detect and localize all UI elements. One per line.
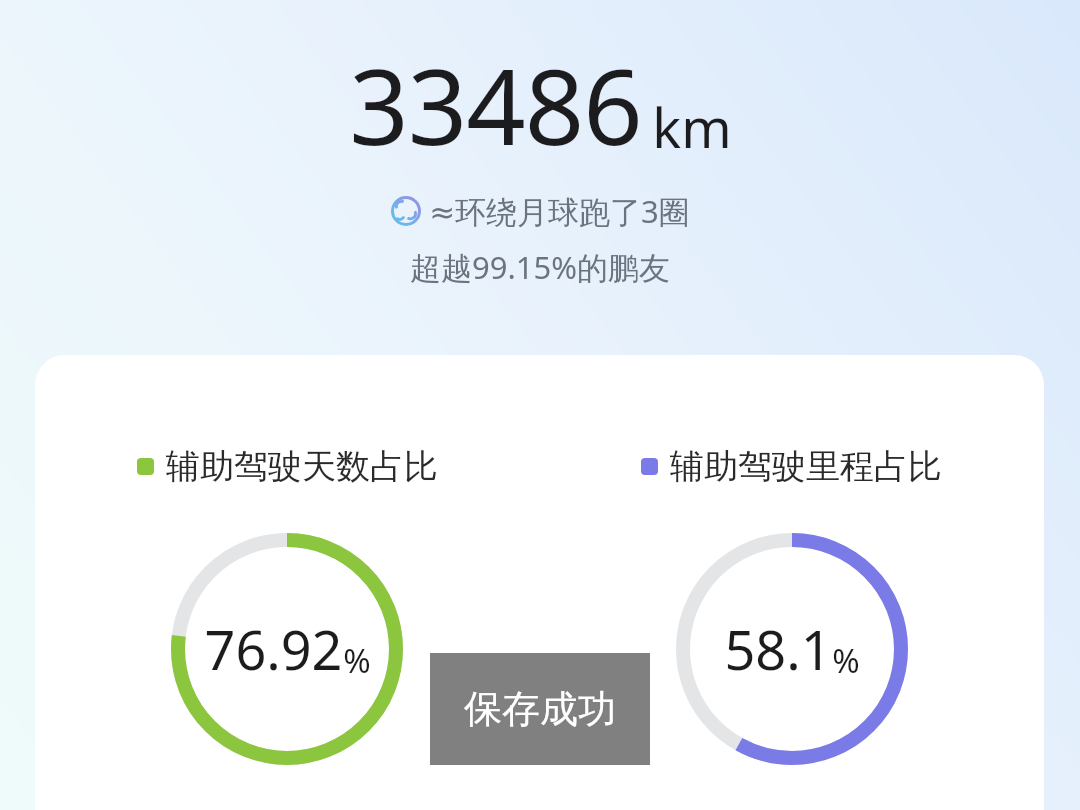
staticText: % xyxy=(343,638,371,683)
button[interactable]: 辅助驾驶天数占比 xyxy=(35,355,1044,810)
button[interactable]: 保存成功 xyxy=(430,653,650,765)
staticText: 超越99.15%的鹏友 xyxy=(410,246,670,288)
button[interactable]: 辅助驾驶天数占比 xyxy=(35,355,539,765)
staticText: 33486 xyxy=(349,34,642,176)
staticText: 辅助驾驶里程占比 xyxy=(670,445,942,488)
staticText: 76.92 xyxy=(204,612,343,686)
other: Globe xyxy=(391,196,421,226)
staticText: 58.1 xyxy=(724,612,832,686)
staticText: km xyxy=(652,90,732,164)
staticText: 辅助驾驶天数占比 xyxy=(166,445,438,488)
staticText: ≈环绕月球跑了3圈 xyxy=(429,190,690,232)
button[interactable]: 辅助驾驶里程占比 xyxy=(539,355,1044,765)
staticText: 保存成功 xyxy=(464,685,616,733)
staticText: % xyxy=(832,638,860,683)
